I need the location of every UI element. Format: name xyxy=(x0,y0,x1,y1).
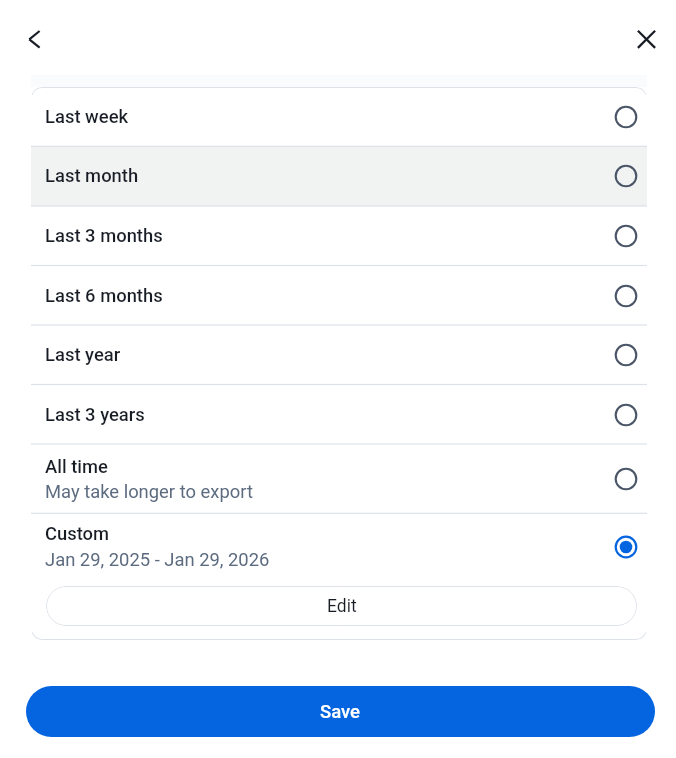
staticText: May take longer to export xyxy=(45,481,253,503)
staticText: Last month xyxy=(45,165,139,187)
button[interactable]: Last 6 months xyxy=(31,266,647,326)
button[interactable]: Last 3 months xyxy=(31,206,647,266)
staticText: Edit xyxy=(327,596,357,617)
staticText: Last 3 years xyxy=(45,404,145,426)
button[interactable]: Close xyxy=(622,15,671,64)
button[interactable]: All time xyxy=(31,444,647,513)
staticText: Last 3 months xyxy=(45,225,163,247)
button[interactable]: Last 3 years xyxy=(31,385,647,445)
button[interactable]: Save xyxy=(26,686,655,737)
button[interactable]: Back xyxy=(10,15,59,64)
staticText: Last year xyxy=(45,344,121,366)
button[interactable]: Custom xyxy=(31,513,647,586)
button[interactable]: Last week xyxy=(31,87,647,146)
staticText: Save xyxy=(320,701,361,723)
staticText: Last week xyxy=(45,106,129,128)
button[interactable]: Last month xyxy=(31,146,647,206)
staticText: All time xyxy=(45,456,108,478)
staticText: Last 6 months xyxy=(45,285,163,307)
staticText: Jan 29, 2025 - Jan 29, 2026 xyxy=(45,549,270,571)
staticText: Custom xyxy=(45,523,110,545)
button[interactable]: Edit xyxy=(46,586,637,626)
button[interactable]: Last year xyxy=(31,325,647,385)
